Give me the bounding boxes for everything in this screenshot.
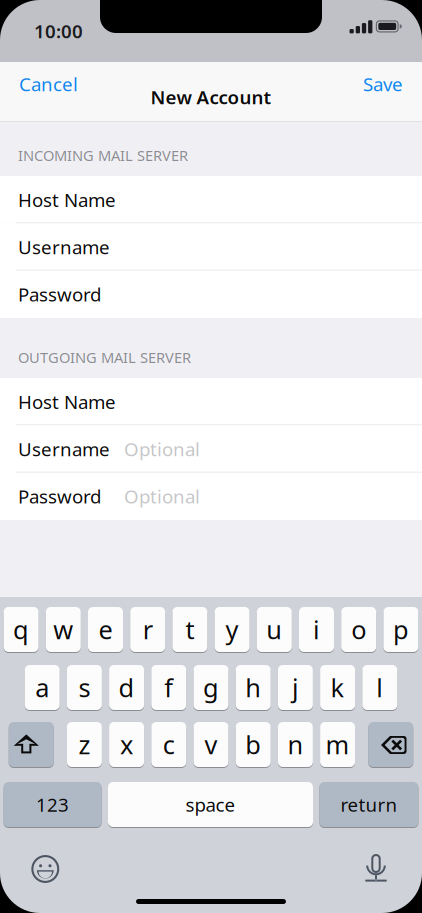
staticText: h: [245, 671, 261, 704]
button[interactable]: r: [130, 606, 165, 653]
staticText: m: [326, 728, 350, 761]
button[interactable]: n: [278, 721, 313, 768]
staticText: 123: [36, 792, 69, 817]
staticText: Optional: [124, 484, 200, 509]
button[interactable]: space: [108, 781, 313, 828]
button[interactable]: Dictation: [349, 844, 405, 888]
staticText: c: [163, 728, 175, 761]
staticText: Password: [18, 484, 101, 509]
button[interactable]: h: [236, 664, 271, 711]
button[interactable]: return: [319, 781, 418, 828]
staticText: g: [203, 671, 219, 704]
staticText: INCOMING MAIL SERVER: [18, 145, 188, 165]
staticText: Username: [18, 235, 110, 259]
staticText: Save: [363, 72, 403, 96]
staticText: OUTGOING MAIL SERVER: [18, 347, 191, 367]
button[interactable]: Save: [360, 65, 406, 103]
button[interactable]: Username: [0, 425, 422, 473]
button[interactable]: q: [4, 606, 39, 653]
button[interactable]: Username: [0, 223, 422, 271]
button[interactable]: x: [109, 721, 144, 768]
staticText: l: [376, 671, 383, 704]
staticText: space: [185, 792, 235, 817]
button[interactable]: Delete: [368, 721, 413, 768]
staticText: u: [266, 613, 282, 646]
staticText: e: [98, 613, 112, 646]
staticText: return: [340, 792, 397, 817]
button[interactable]: c: [151, 721, 186, 768]
button[interactable]: m: [320, 721, 355, 768]
button[interactable]: Password: [0, 473, 422, 520]
staticText: q: [13, 613, 29, 646]
staticText: s: [78, 671, 90, 704]
button[interactable]: Shift: [9, 721, 54, 768]
button[interactable]: p: [383, 606, 418, 653]
staticText: i: [313, 613, 320, 646]
staticText: Host Name: [18, 389, 116, 414]
button[interactable]: o: [341, 606, 376, 653]
staticText: k: [331, 671, 345, 704]
button[interactable]: b: [236, 721, 271, 768]
staticText: 10:00: [34, 19, 83, 43]
staticText: b: [245, 728, 261, 761]
button[interactable]: v: [193, 721, 228, 768]
button[interactable]: e: [88, 606, 123, 653]
button[interactable]: k: [320, 664, 355, 711]
staticText: p: [393, 613, 409, 646]
staticText: a: [35, 671, 49, 704]
staticText: Username: [18, 437, 110, 461]
button[interactable]: 123: [4, 781, 102, 828]
button[interactable]: Host Name: [0, 378, 422, 425]
button[interactable]: i: [299, 606, 334, 653]
button[interactable]: s: [67, 664, 102, 711]
staticText: f: [164, 671, 173, 704]
button[interactable]: Cancel: [16, 65, 81, 103]
staticText: Password: [18, 282, 101, 307]
staticText: j: [292, 671, 299, 704]
button[interactable]: Emoji: [17, 844, 73, 888]
staticText: t: [185, 613, 194, 646]
staticText: Cancel: [19, 72, 78, 96]
button[interactable]: y: [215, 606, 250, 653]
staticText: o: [351, 613, 366, 646]
button[interactable]: z: [67, 721, 102, 768]
staticText: Host Name: [18, 187, 116, 212]
staticText: w: [53, 613, 73, 646]
button[interactable]: l: [362, 664, 397, 711]
staticText: y: [226, 613, 239, 646]
staticText: New Account: [150, 85, 271, 109]
staticText: x: [120, 728, 133, 761]
button[interactable]: a: [25, 664, 60, 711]
staticText: Optional: [124, 437, 200, 461]
staticText: d: [119, 671, 135, 704]
button[interactable]: j: [278, 664, 313, 711]
button[interactable]: u: [257, 606, 292, 653]
staticText: v: [204, 728, 217, 761]
button[interactable]: g: [193, 664, 228, 711]
button[interactable]: f: [151, 664, 186, 711]
button[interactable]: Password: [0, 271, 422, 318]
button[interactable]: d: [109, 664, 144, 711]
button[interactable]: Host Name: [0, 176, 422, 223]
staticText: r: [143, 613, 153, 646]
staticText: z: [78, 728, 90, 761]
button[interactable]: t: [172, 606, 207, 653]
staticText: n: [287, 728, 303, 761]
button[interactable]: w: [46, 606, 81, 653]
